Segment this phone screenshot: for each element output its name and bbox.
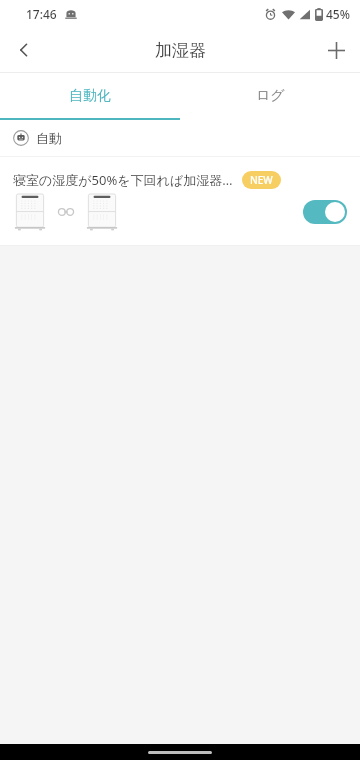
button[interactable]: 自動化 (0, 73, 180, 118)
button[interactable]: Add (312, 28, 360, 72)
staticText: ログ (256, 87, 285, 105)
staticText: 自動 (36, 130, 62, 146)
staticText: 17:46 (26, 6, 57, 22)
button[interactable]: Back (0, 28, 48, 72)
staticText: 寝室の湿度が50%を下回れば加湿器… (13, 171, 233, 189)
staticText: 45% (326, 6, 350, 22)
staticText: NEW (250, 173, 273, 187)
button[interactable]: ログ (180, 73, 360, 118)
button[interactable]: Toggle automation (303, 200, 347, 224)
staticText: 加湿器 (155, 40, 206, 61)
button[interactable]: 寝室の湿度が50%を下回れば加湿器… (0, 157, 360, 245)
staticText: 自動化 (69, 87, 111, 105)
